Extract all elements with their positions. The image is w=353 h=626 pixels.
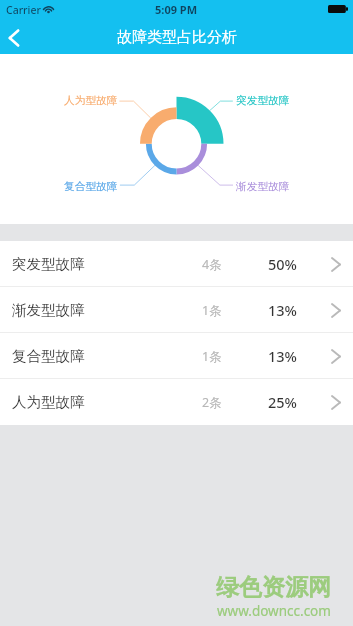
button[interactable]: 人为型故障 bbox=[0, 379, 353, 425]
staticText: 13% bbox=[268, 300, 297, 320]
staticText: 1条 bbox=[202, 302, 222, 319]
staticText: 故障类型占比分析 bbox=[117, 28, 237, 47]
staticText: 复合型故障 bbox=[12, 347, 85, 365]
staticText: 13% bbox=[268, 346, 297, 366]
staticText: 1条 bbox=[202, 348, 222, 365]
button[interactable]: 复合型故障 bbox=[0, 333, 353, 379]
staticText: 渐发型故障 bbox=[236, 180, 290, 193]
staticText: www.downcc.com bbox=[217, 602, 331, 620]
staticText: 绿色资源网 bbox=[216, 573, 331, 602]
staticText: 人为型故障 bbox=[64, 94, 118, 107]
staticText: 4条 bbox=[202, 256, 222, 273]
staticText: 突发型故障 bbox=[236, 94, 290, 107]
button[interactable]: 渐发型故障 bbox=[0, 287, 353, 333]
staticText: 人为型故障 bbox=[12, 393, 85, 411]
staticText: 突发型故障 bbox=[12, 255, 85, 273]
staticText: 2条 bbox=[202, 394, 222, 411]
button[interactable]: Back bbox=[0, 19, 34, 54]
button[interactable]: 突发型故障 bbox=[0, 241, 353, 287]
staticText: 复合型故障 bbox=[64, 180, 118, 193]
staticText: Carrier bbox=[6, 3, 41, 17]
staticText: 5:09 PM bbox=[155, 2, 198, 17]
staticText: 50% bbox=[268, 254, 297, 274]
staticText: 渐发型故障 bbox=[12, 301, 85, 319]
staticText: 25% bbox=[268, 392, 297, 412]
